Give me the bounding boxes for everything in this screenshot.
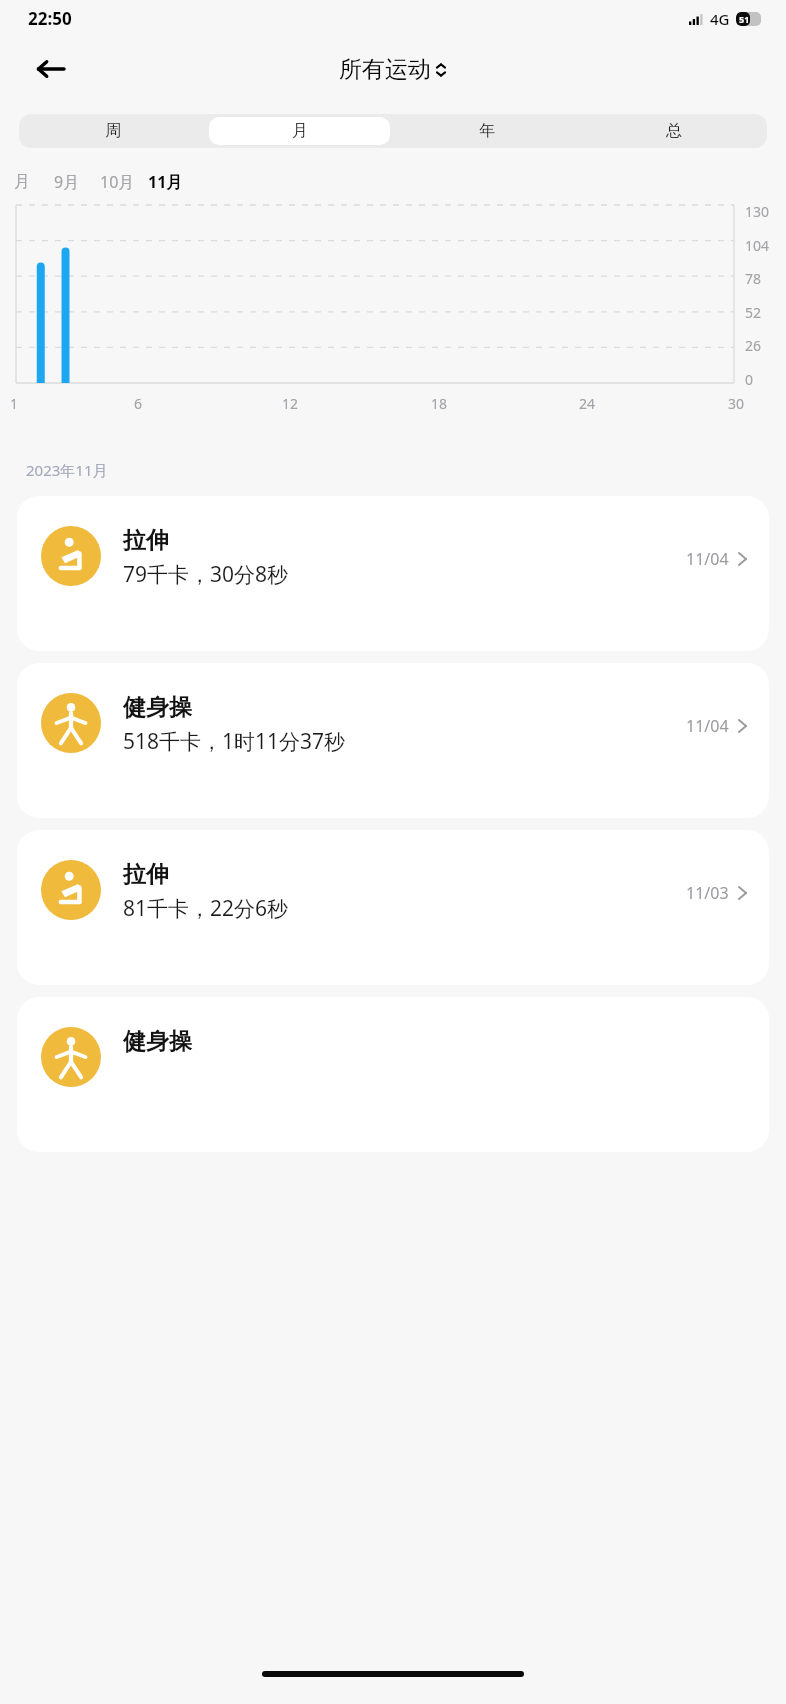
button[interactable]: 10月 (100, 171, 135, 193)
staticText: 周 (105, 121, 121, 141)
staticText: 18 (431, 394, 448, 413)
staticText: 52 (745, 303, 762, 319)
staticText: 拉伸 (123, 526, 169, 555)
staticText: 总 (666, 121, 682, 141)
staticText: 51 (739, 13, 750, 25)
button[interactable]: 11月 (148, 171, 183, 193)
staticText: 104 (745, 236, 770, 252)
staticText: 11/03 (686, 882, 729, 904)
staticText: 健身操 (123, 693, 192, 722)
staticText: 81千卡，22分6秒 (123, 894, 289, 923)
button[interactable]: 周 (22, 117, 203, 145)
button[interactable]: 总 (583, 117, 764, 145)
button[interactable]: 健身操 (17, 663, 769, 818)
staticText: 1 (10, 394, 19, 413)
staticText: 月 (292, 121, 308, 141)
staticText: 0 (745, 370, 754, 386)
staticText: 拉伸 (123, 860, 169, 889)
button[interactable]: 月 (209, 117, 390, 145)
button[interactable]: 年 (396, 117, 577, 145)
staticText: 6 (134, 394, 143, 413)
button[interactable]: 拉伸 (17, 496, 769, 651)
staticText: 518千卡，1时11分37秒 (123, 727, 346, 756)
staticText: 4G (710, 9, 730, 29)
staticText: 26 (745, 336, 762, 352)
staticText: 年 (479, 121, 495, 141)
staticText: 30 (728, 394, 745, 413)
button[interactable]: 健身操 (17, 997, 769, 1152)
button[interactable]: 月 (14, 172, 30, 192)
staticText: 12 (282, 394, 299, 413)
staticText: 78 (745, 269, 762, 285)
staticText: 22:50 (28, 7, 72, 30)
button[interactable]: 所有运动 (339, 55, 447, 84)
button[interactable]: 拉伸 (17, 830, 769, 985)
button[interactable]: Back (26, 45, 74, 93)
staticText: 11/04 (686, 715, 729, 737)
staticText: 130 (745, 202, 770, 218)
staticText: 健身操 (123, 1027, 192, 1056)
staticText: 24 (579, 394, 596, 413)
staticText: 11/04 (686, 548, 729, 570)
staticText: 2023年11月 (26, 460, 108, 480)
staticText: 79千卡，30分8秒 (123, 560, 289, 589)
staticText: 所有运动 (339, 55, 431, 84)
button[interactable]: 9月 (54, 171, 80, 193)
